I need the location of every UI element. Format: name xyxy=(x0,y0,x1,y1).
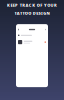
staticText: TATTOO DESIGN xyxy=(14,10,50,16)
staticText: KEEP TRACK OF YOUR xyxy=(7,3,57,8)
button[interactable]: Filter designs xyxy=(16,34,48,40)
button[interactable]: Tattoo design xyxy=(16,40,48,44)
